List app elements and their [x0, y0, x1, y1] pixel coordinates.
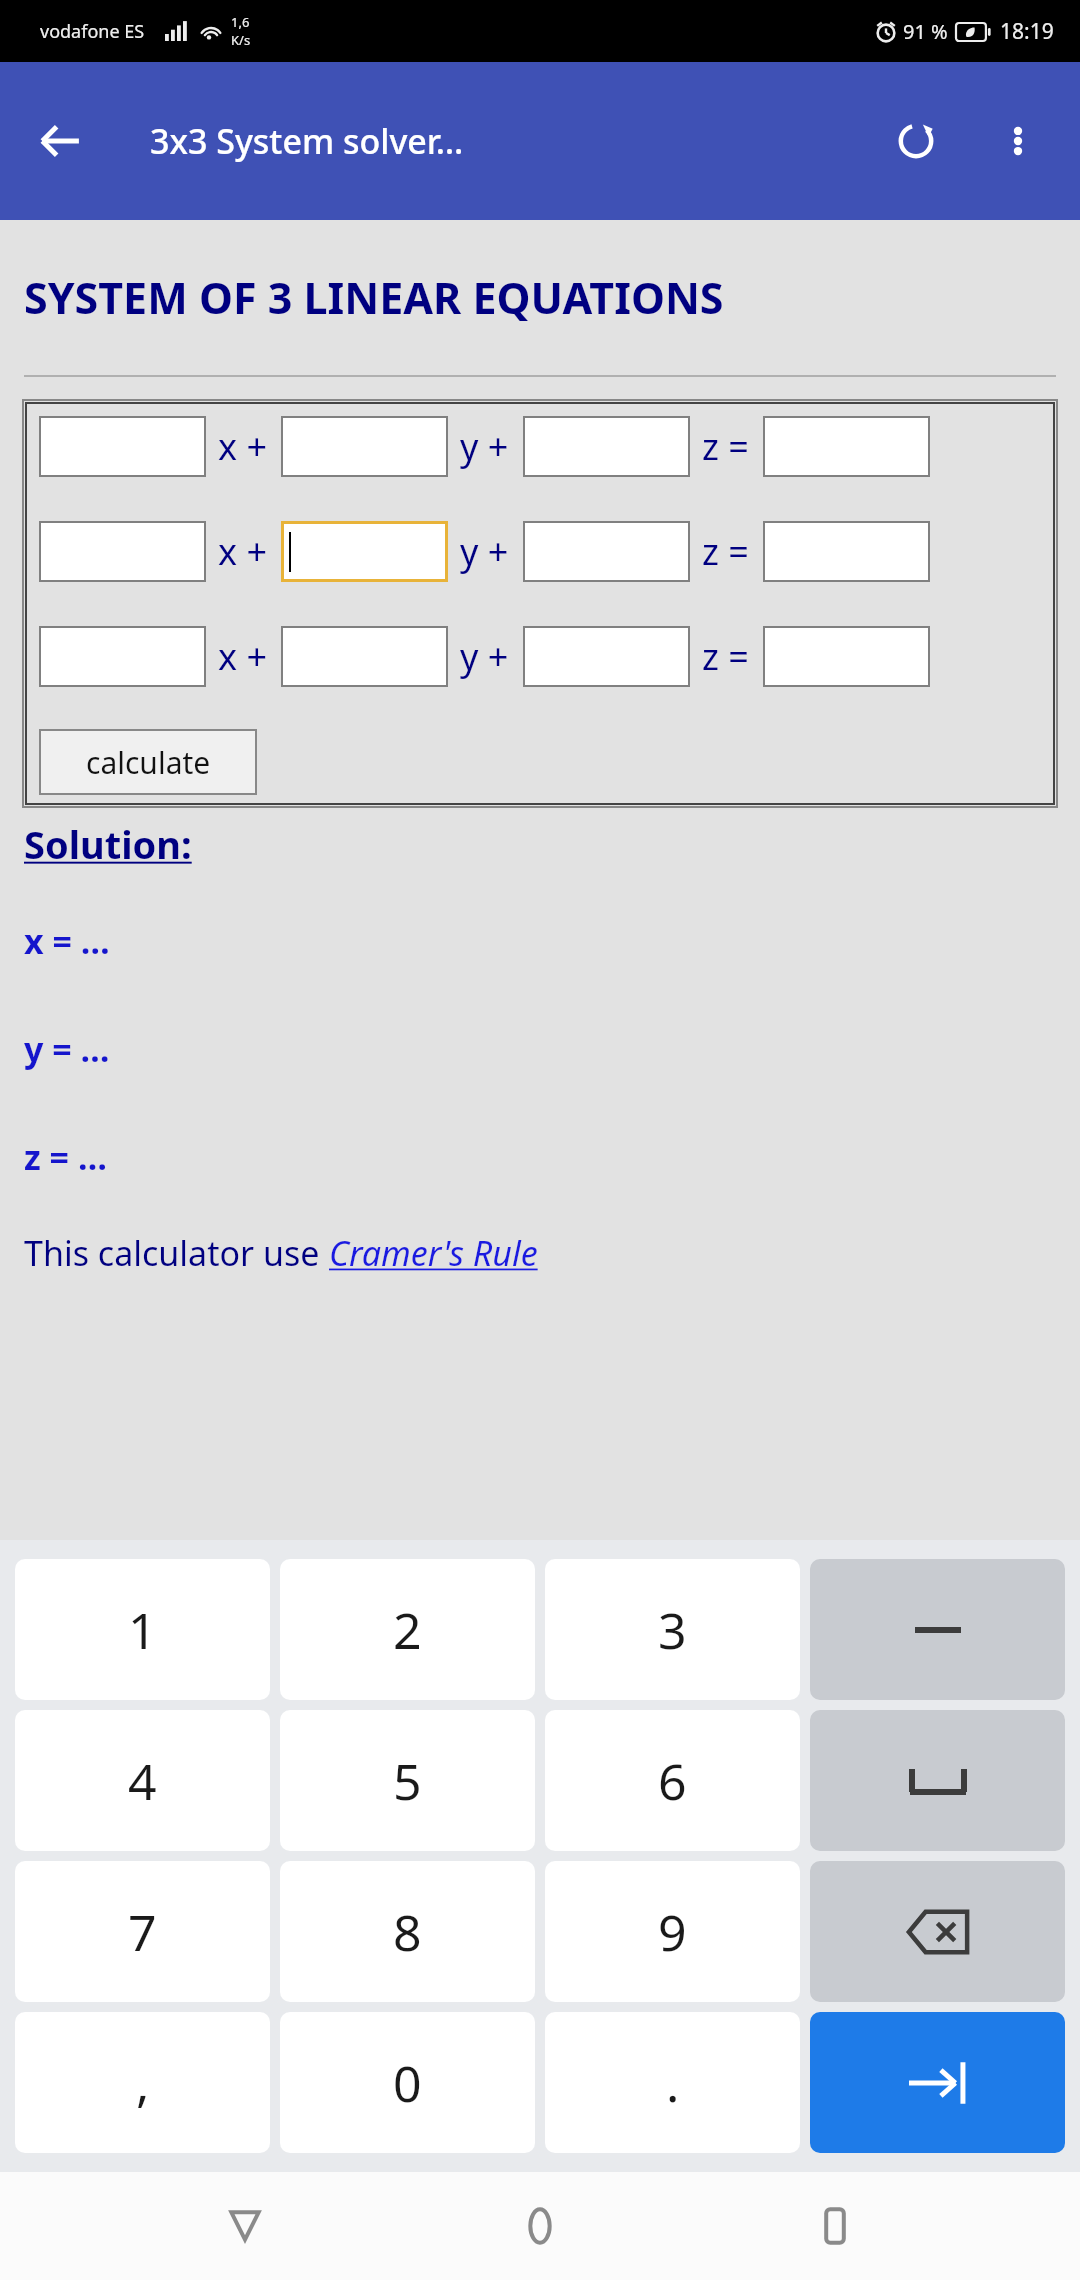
- button[interactable]: Coefficient input: [39, 416, 206, 477]
- staticText: x +: [218, 422, 267, 471]
- staticText: y +: [460, 527, 509, 576]
- staticText: x +: [218, 632, 267, 681]
- button[interactable]: 5: [280, 1710, 535, 1851]
- staticText: 2: [393, 1596, 422, 1664]
- button[interactable]: 9: [545, 1861, 800, 2002]
- staticText: 7: [128, 1898, 157, 1966]
- button[interactable]: Recent apps: [785, 2176, 885, 2276]
- staticText: 3x3 System solver…: [150, 118, 464, 164]
- button[interactable]: Coefficient input: [281, 521, 448, 582]
- staticText: 6: [658, 1747, 687, 1815]
- staticText: y +: [460, 632, 509, 681]
- staticText: x = …: [24, 918, 110, 964]
- button[interactable]: Coefficient input: [523, 626, 690, 687]
- button[interactable]: ,: [15, 2012, 270, 2153]
- staticText: K/s: [231, 31, 251, 49]
- staticText: x +: [218, 527, 267, 576]
- staticText: ,: [136, 2049, 150, 2117]
- staticText: z =: [702, 422, 749, 471]
- button[interactable]: 4: [15, 1710, 270, 1851]
- button[interactable]: 3: [545, 1559, 800, 1700]
- staticText: 4: [128, 1747, 157, 1815]
- staticText: calculate: [86, 742, 211, 783]
- staticText: Solution:: [24, 818, 192, 870]
- button[interactable]: Space: [810, 1710, 1065, 1851]
- button[interactable]: .: [545, 2012, 800, 2153]
- staticText: 8: [393, 1898, 422, 1966]
- button[interactable]: Cramer's Rule: [329, 1230, 538, 1276]
- button[interactable]: Back: [26, 107, 94, 175]
- button[interactable]: 7: [15, 1861, 270, 2002]
- button[interactable]: Coefficient input: [281, 416, 448, 477]
- button[interactable]: Coefficient input: [763, 626, 930, 687]
- button[interactable]: Coefficient input: [523, 521, 690, 582]
- staticText: z = …: [24, 1134, 107, 1180]
- button[interactable]: 8: [280, 1861, 535, 2002]
- staticText: 5: [393, 1747, 422, 1815]
- button[interactable]: Next: [810, 2012, 1065, 2153]
- staticText: 3: [658, 1596, 687, 1664]
- button[interactable]: 2: [280, 1559, 535, 1700]
- staticText: 91 %: [903, 18, 948, 45]
- staticText: This calculator use: [24, 1230, 329, 1276]
- button[interactable]: Coefficient input: [281, 626, 448, 687]
- staticText: 9: [658, 1898, 687, 1966]
- staticText: SYSTEM OF 3 LINEAR EQUATIONS: [24, 268, 724, 327]
- staticText: vodafone ES: [40, 19, 145, 44]
- button[interactable]: Home: [490, 2176, 590, 2276]
- button[interactable]: Coefficient input: [763, 416, 930, 477]
- button[interactable]: More options: [984, 107, 1052, 175]
- staticText: z =: [702, 632, 749, 681]
- staticText: y = …: [24, 1026, 110, 1072]
- staticText: y +: [460, 422, 509, 471]
- staticText: 0: [393, 2049, 422, 2117]
- button[interactable]: Back: [195, 2176, 295, 2276]
- button[interactable]: 6: [545, 1710, 800, 1851]
- button[interactable]: Reload: [882, 107, 950, 175]
- button[interactable]: Coefficient input: [39, 626, 206, 687]
- button[interactable]: Minus: [810, 1559, 1065, 1700]
- button[interactable]: Coefficient input: [763, 521, 930, 582]
- staticText: z =: [702, 527, 749, 576]
- button[interactable]: 1: [15, 1559, 270, 1700]
- button[interactable]: Coefficient input: [39, 521, 206, 582]
- staticText: .: [666, 2049, 680, 2117]
- button[interactable]: 0: [280, 2012, 535, 2153]
- staticText: 1,6: [231, 13, 250, 31]
- button[interactable]: Coefficient input: [523, 416, 690, 477]
- button[interactable]: calculate: [39, 729, 257, 795]
- staticText: 18:19: [1000, 17, 1054, 46]
- button[interactable]: Delete: [810, 1861, 1065, 2002]
- staticText: 1: [128, 1596, 157, 1664]
